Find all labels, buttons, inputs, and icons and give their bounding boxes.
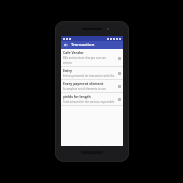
staticText: Total amount for the various responsible…	[63, 100, 115, 104]
button[interactable]: Entry	[61, 67, 123, 79]
button[interactable]: More options	[117, 56, 121, 60]
staticText: Entry	[63, 68, 73, 73]
button[interactable]: More options	[117, 84, 121, 88]
staticText: A complete set of elements to use determ…	[63, 87, 115, 91]
staticText: yields for length	[63, 94, 91, 99]
staticText: Bills and services charges sum are categ…	[63, 56, 115, 60]
button[interactable]: More options	[117, 97, 121, 101]
button[interactable]: Cafe Vendor	[61, 49, 123, 66]
staticText: entries	[63, 61, 72, 65]
staticText: Transaction	[71, 42, 95, 48]
button[interactable]: yields for length	[61, 93, 123, 105]
button[interactable]: Back	[63, 42, 69, 48]
staticText: Every payment element	[63, 81, 104, 86]
button[interactable]: Every payment element	[61, 80, 123, 92]
staticText: Cafe Vendor	[63, 50, 84, 55]
staticText: Entries proceeds for transaction with th…	[63, 74, 115, 78]
button[interactable]: More options	[117, 71, 121, 75]
